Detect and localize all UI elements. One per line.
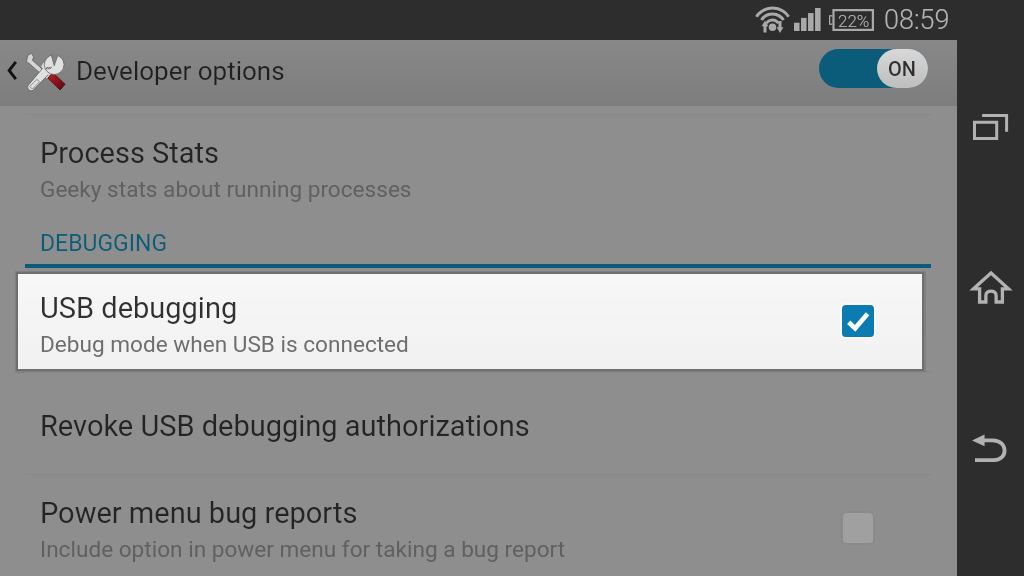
staticText: Include option in power menu for taking … bbox=[40, 536, 566, 562]
button[interactable]: Developer options toggle, on bbox=[819, 49, 928, 88]
button[interactable]: Home bbox=[957, 256, 1024, 318]
button[interactable]: Back bbox=[957, 417, 1024, 479]
button[interactable]: Revoke USB debugging authorizations bbox=[0, 373, 957, 474]
staticText: Debug mode when USB is connected bbox=[40, 331, 409, 357]
staticText: Geeky stats about running processes bbox=[40, 176, 412, 202]
staticText: 22% bbox=[838, 11, 870, 31]
button[interactable]: Recents bbox=[957, 96, 1024, 158]
button[interactable]: Process Stats bbox=[0, 115, 957, 222]
staticText: Process Stats bbox=[40, 136, 219, 170]
staticText: USB debugging bbox=[40, 291, 238, 325]
staticText: 08:59 bbox=[884, 4, 950, 36]
staticText: ON bbox=[888, 57, 917, 80]
button[interactable]: Navigate up bbox=[0, 40, 70, 106]
staticText: Power menu bug reports bbox=[40, 496, 358, 530]
staticText: Revoke USB debugging authorizations bbox=[40, 409, 530, 443]
staticText: Developer options bbox=[76, 56, 285, 86]
button[interactable]: USB debugging bbox=[18, 274, 922, 369]
staticText: DEBUGGING bbox=[40, 230, 168, 257]
button[interactable]: Power menu bug reports bbox=[0, 475, 957, 576]
